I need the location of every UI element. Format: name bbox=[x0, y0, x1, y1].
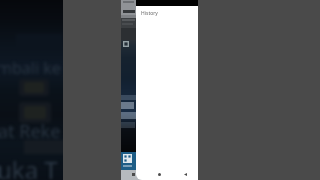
staticText: uka T bbox=[0, 153, 58, 180]
staticText: mbali ke h bbox=[0, 57, 60, 79]
button[interactable]: Back bbox=[172, 168, 198, 180]
button[interactable]: Recent apps bbox=[121, 168, 146, 180]
staticText: History bbox=[141, 10, 158, 17]
staticText: at Reke bbox=[0, 119, 61, 144]
button[interactable]: Home bbox=[146, 168, 172, 180]
